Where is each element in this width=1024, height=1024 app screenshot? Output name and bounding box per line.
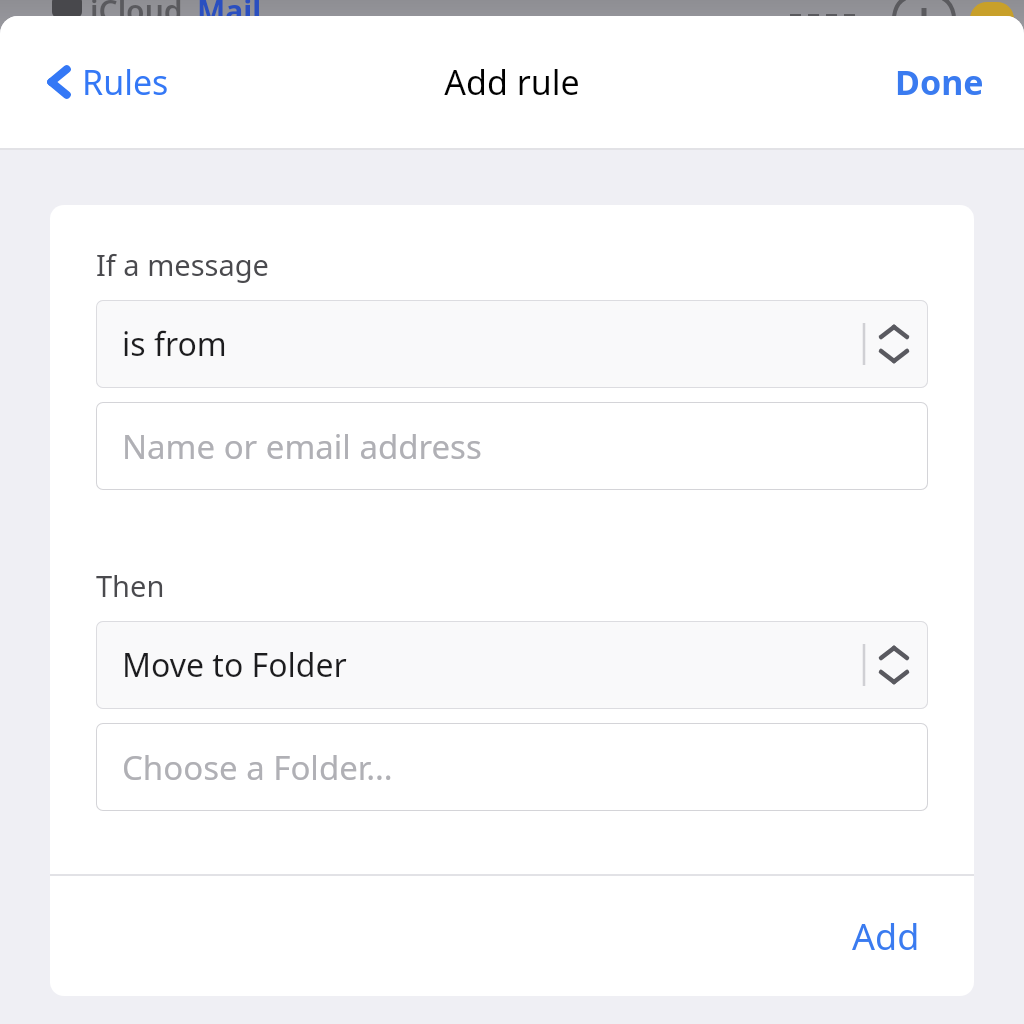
button[interactable]: Name or email address xyxy=(96,402,928,490)
staticText: Add xyxy=(852,912,920,961)
staticText: Add rule xyxy=(444,59,580,105)
staticText: If a message xyxy=(96,245,269,284)
staticText: Name or email address xyxy=(122,424,482,469)
staticText: Rules xyxy=(82,59,169,105)
button[interactable]: is from xyxy=(96,300,928,388)
button[interactable]: Done xyxy=(889,51,990,113)
staticText: is from xyxy=(122,322,227,366)
button[interactable]: Rules xyxy=(40,51,175,113)
staticText: Mail xyxy=(197,0,262,24)
button[interactable]: Move to Folder xyxy=(96,621,928,709)
button[interactable]: Choose a Folder... xyxy=(96,723,928,811)
staticText: iCloud xyxy=(90,0,183,24)
staticText: Move to Folder xyxy=(122,643,347,687)
staticText: Then xyxy=(96,566,165,605)
staticText: Choose a Folder... xyxy=(122,745,393,790)
button[interactable]: Add xyxy=(842,902,930,971)
staticText: Done xyxy=(895,59,984,105)
